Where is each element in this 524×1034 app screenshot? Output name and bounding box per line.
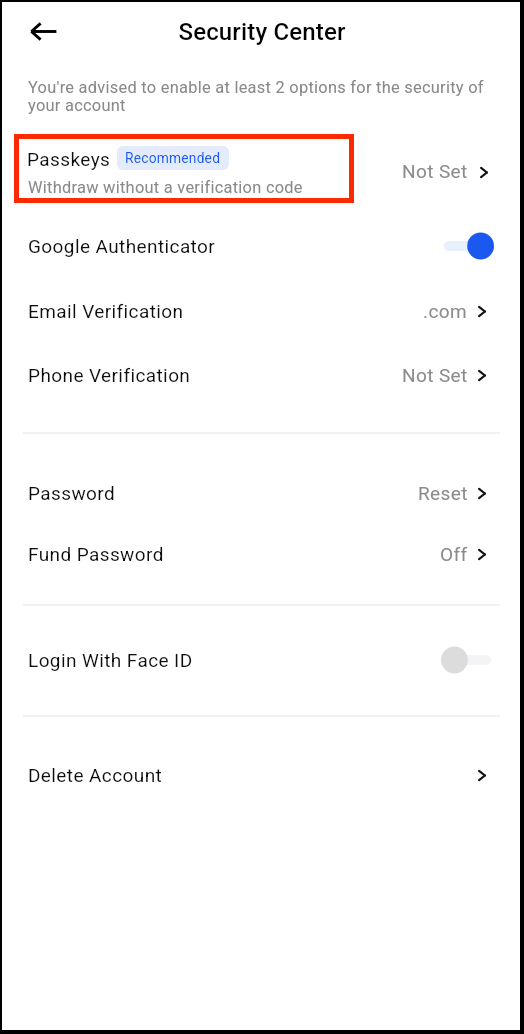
- staticText: Recommended: [125, 150, 221, 166]
- button[interactable]: Login With Face ID, disabled: [0, 630, 518, 690]
- button[interactable]: Turn off: [444, 232, 494, 260]
- button[interactable]: Turn on: [441, 646, 491, 674]
- staticText: Reset: [418, 482, 468, 504]
- staticText: .com: [423, 300, 468, 322]
- staticText: Off: [440, 543, 468, 565]
- staticText: Google Authenticator: [28, 235, 216, 257]
- button[interactable]: Delete Account: [0, 745, 518, 805]
- button[interactable]: Phone Verification: [0, 343, 518, 407]
- staticText: Delete Account: [28, 764, 163, 786]
- staticText: Security Center: [3, 18, 521, 46]
- button[interactable]: Fund Password: [0, 523, 518, 585]
- staticText: Email Verification: [28, 300, 184, 322]
- button[interactable]: Google Authenticator, enabled: [0, 214, 518, 278]
- button[interactable]: Email Verification: [0, 279, 518, 343]
- staticText: Withdraw without a verification code: [28, 178, 303, 197]
- staticText: Not Set: [402, 364, 468, 386]
- staticText: You're advised to enable at least 2 opti…: [28, 78, 490, 115]
- staticText: Passkeys: [27, 148, 111, 170]
- staticText: Not Set: [402, 160, 468, 182]
- button[interactable]: Passkeys, Not Set: [0, 131, 518, 203]
- button[interactable]: Back: [22, 10, 64, 52]
- button[interactable]: Password: [0, 462, 518, 524]
- staticText: Login With Face ID: [28, 649, 193, 671]
- staticText: Phone Verification: [28, 364, 191, 386]
- staticText: Password: [28, 482, 116, 504]
- staticText: Fund Password: [28, 543, 164, 565]
